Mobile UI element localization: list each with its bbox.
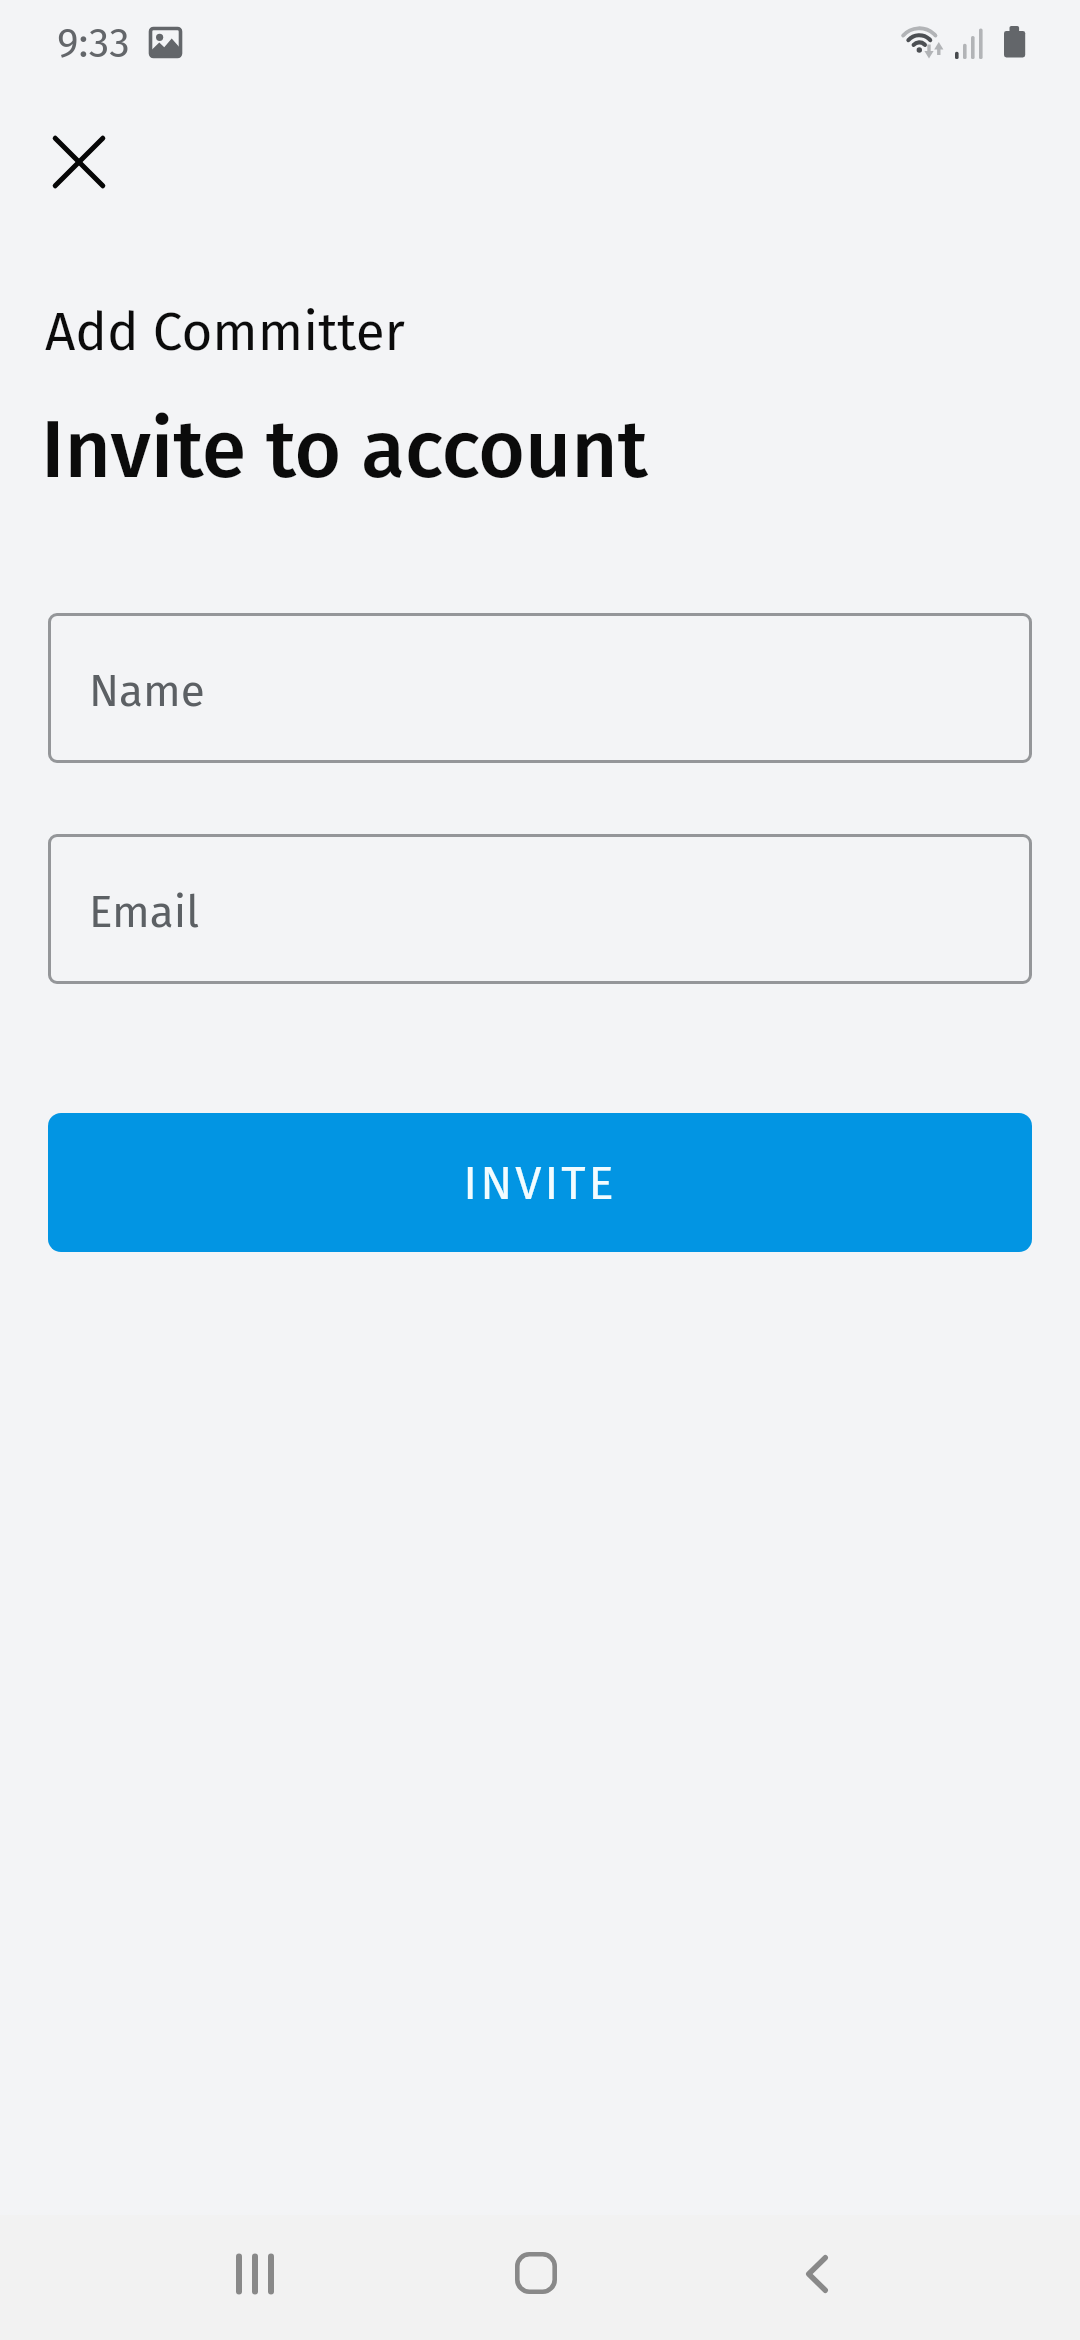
staticText: Invite to account	[41, 402, 648, 498]
staticText: Add Committer	[45, 300, 405, 364]
staticText: Email	[89, 886, 200, 939]
staticText: 9:33	[57, 19, 130, 68]
staticText: INVITE	[463, 1155, 617, 1211]
staticText: Name	[89, 665, 205, 718]
button[interactable]: Email	[48, 834, 1032, 984]
button[interactable]: Close	[34, 117, 123, 206]
button[interactable]: Name	[48, 613, 1032, 763]
button[interactable]: Back	[757, 2211, 877, 2336]
button[interactable]: Home	[476, 2210, 596, 2335]
button[interactable]: Recent apps	[195, 2211, 315, 2336]
button[interactable]: INVITE	[48, 1113, 1032, 1252]
